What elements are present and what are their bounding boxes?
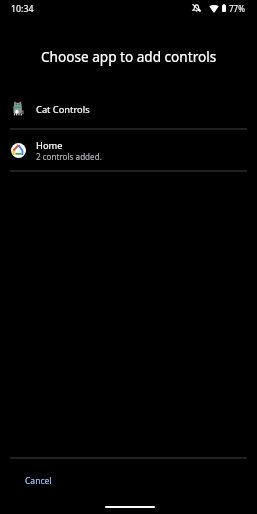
other: Notifications silenced — [192, 4, 201, 12]
staticText: 10:34 — [11, 3, 34, 15]
other: Google Home app icon — [11, 143, 26, 158]
button[interactable]: Cat Controls app icon — [0, 96, 257, 129]
staticText: 2 controls added. — [36, 151, 102, 162]
staticText: Cat Controls — [36, 103, 90, 116]
button[interactable]: Cancel — [15, 469, 62, 493]
staticText: 77% — [229, 3, 245, 14]
other: Cat Controls app icon — [12, 101, 28, 117]
staticText: Cancel — [25, 475, 52, 487]
other: Wi-Fi — [209, 5, 219, 13]
staticText: Choose app to add controls — [41, 47, 217, 66]
button[interactable]: Google Home app icon — [0, 129, 257, 171]
other: Battery — [222, 4, 226, 12]
staticText: Home — [36, 139, 63, 152]
